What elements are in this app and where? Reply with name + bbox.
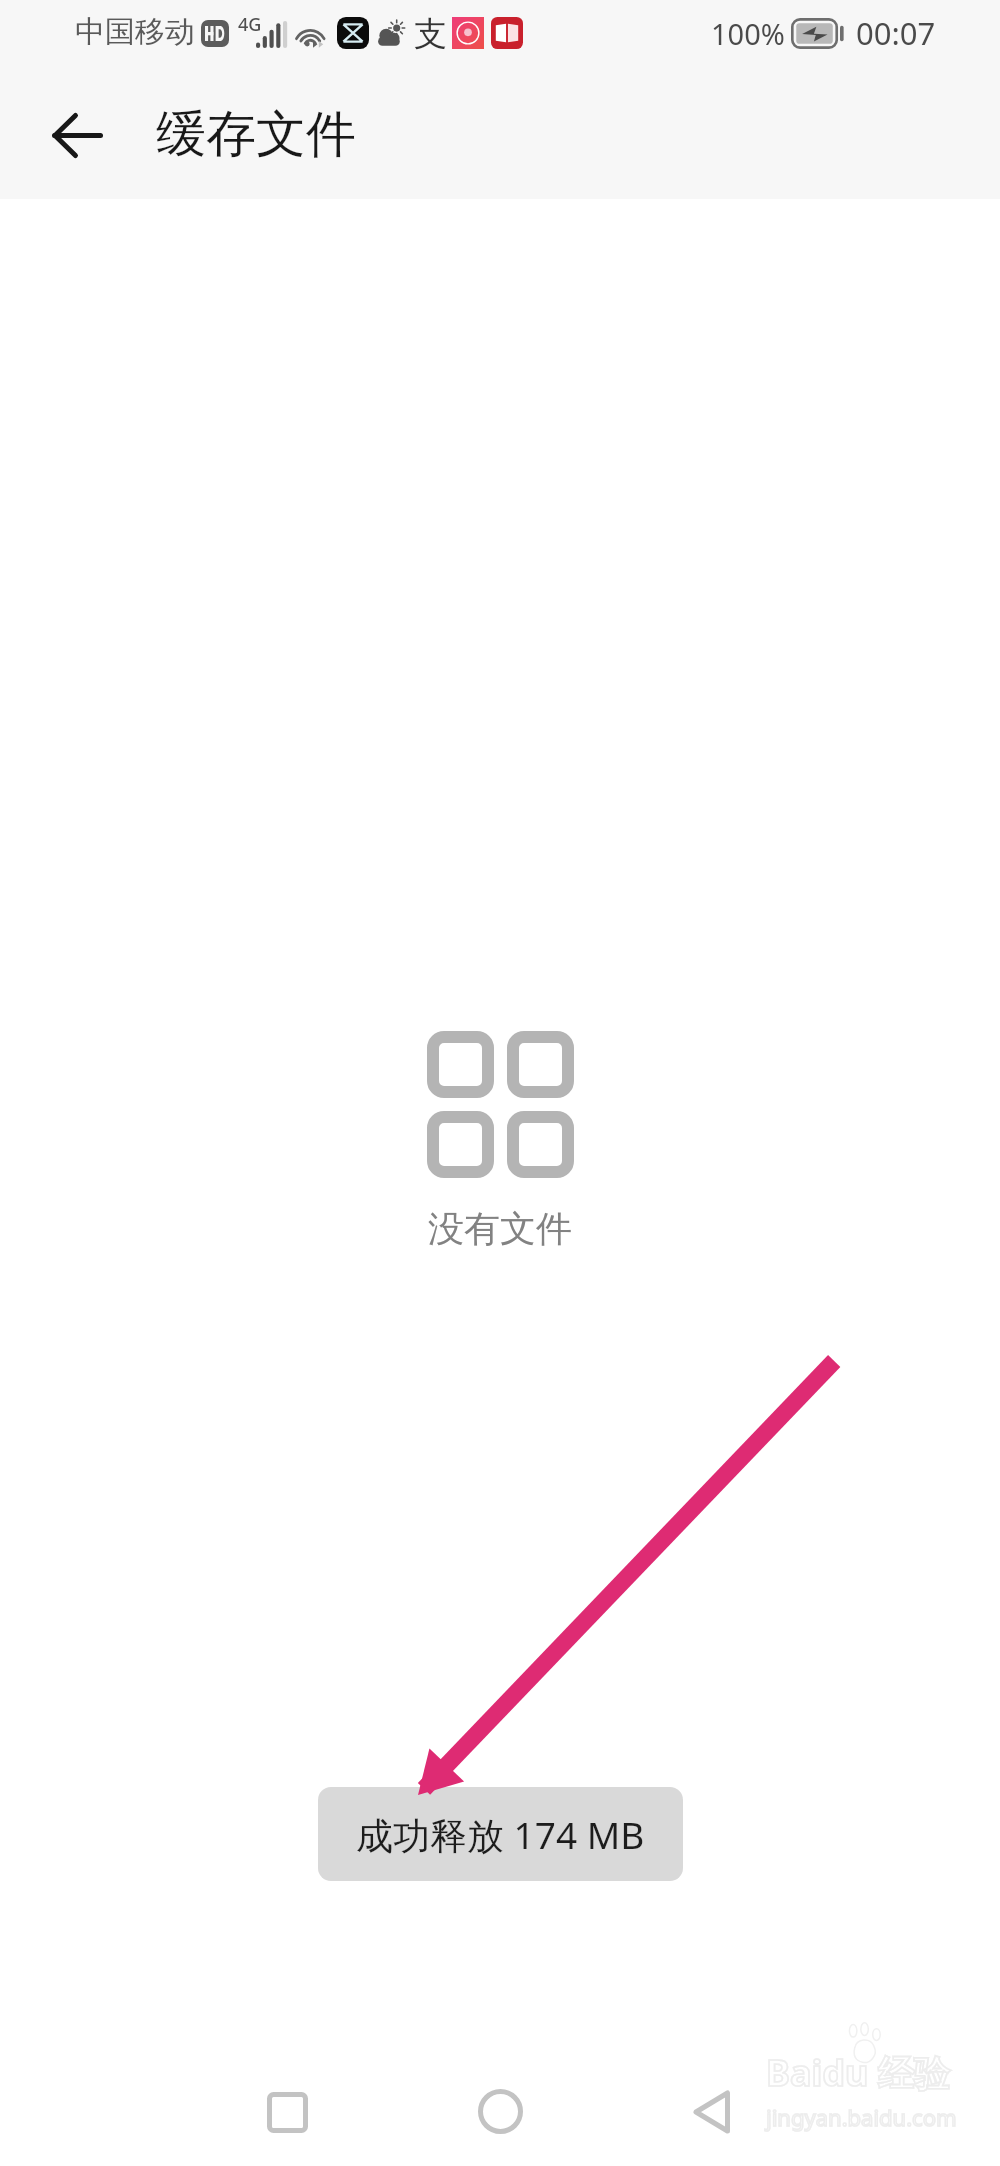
button[interactable]: Back: [665, 2066, 757, 2158]
staticText: Baidu 经验: [766, 2048, 950, 2097]
button[interactable]: Recent apps: [241, 2066, 333, 2158]
staticText: 缓存文件: [156, 103, 356, 166]
staticText: 没有文件: [428, 1206, 572, 1251]
staticText: 成功释放 174 MB: [356, 1809, 645, 1860]
staticText: jingyan.baidu.com: [766, 2102, 957, 2132]
staticText: 00:07: [856, 12, 936, 54]
button[interactable]: Home: [454, 2065, 546, 2157]
button[interactable]: Back: [31, 89, 123, 181]
staticText: 支: [414, 13, 447, 55]
staticText: 100%: [711, 14, 785, 53]
staticText: 中国移动: [75, 13, 195, 51]
staticText: 4G: [238, 12, 262, 37]
